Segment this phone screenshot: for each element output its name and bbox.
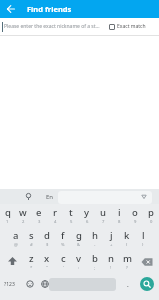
button[interactable]: d xyxy=(39,227,55,250)
button[interactable]: t xyxy=(63,204,79,227)
staticText: 0 xyxy=(150,219,153,225)
button[interactable]: m xyxy=(119,250,135,273)
staticText: : xyxy=(78,265,80,271)
staticText: r xyxy=(53,206,58,219)
staticText: - xyxy=(94,242,96,248)
staticText: 3 xyxy=(38,219,41,225)
staticText: 1 xyxy=(6,219,9,225)
button[interactable]: n xyxy=(103,250,119,273)
button[interactable] xyxy=(41,280,49,288)
button[interactable]: k xyxy=(119,227,135,250)
button[interactable]: g xyxy=(71,227,87,250)
button[interactable]: v xyxy=(71,250,87,273)
button[interactable]: o xyxy=(127,204,143,227)
staticText: ) xyxy=(142,242,144,248)
staticText: i xyxy=(118,206,121,219)
staticText: . xyxy=(127,281,129,289)
staticText: 8 xyxy=(118,219,121,225)
staticText: Please enter the exact nickname of a st.… xyxy=(4,23,100,30)
staticText: y xyxy=(84,206,90,219)
button[interactable]: c xyxy=(55,250,71,273)
button[interactable]: j xyxy=(103,227,119,250)
staticText: ( xyxy=(126,242,128,248)
staticText: ! xyxy=(110,265,112,271)
button[interactable]: s xyxy=(23,227,39,250)
button[interactable]: x xyxy=(39,250,55,273)
staticText: p xyxy=(148,206,154,219)
button[interactable]: h xyxy=(87,227,103,250)
button[interactable]: ?123 xyxy=(0,273,19,296)
staticText: f xyxy=(61,229,65,242)
button[interactable]: z xyxy=(24,250,39,273)
staticText: s xyxy=(29,229,34,242)
staticText: t xyxy=(69,206,73,219)
button[interactable]: q xyxy=(0,204,15,227)
staticText: 6 xyxy=(86,219,89,225)
button[interactable] xyxy=(141,194,147,200)
staticText: 5 xyxy=(70,219,73,225)
staticText: o xyxy=(132,206,138,219)
staticText: # xyxy=(30,242,33,248)
staticText: + xyxy=(110,242,113,248)
staticText: 2 xyxy=(22,219,25,225)
button[interactable]: y xyxy=(79,204,95,227)
staticText: l xyxy=(142,229,145,242)
staticText: d xyxy=(44,229,50,242)
button[interactable]: Please enter the exact nickname of a st.… xyxy=(0,18,159,35)
button[interactable] xyxy=(109,24,115,30)
staticText: q xyxy=(5,206,11,219)
staticText: w xyxy=(19,206,27,219)
button[interactable]: i xyxy=(111,204,127,227)
staticText: v xyxy=(76,252,82,265)
button[interactable]: Find friends xyxy=(0,0,159,18)
staticText: h xyxy=(92,229,98,242)
staticText: z xyxy=(29,252,34,265)
staticText: ?123 xyxy=(4,281,15,288)
staticText: 4 xyxy=(54,219,57,225)
staticText: u xyxy=(100,206,106,219)
staticText: ? xyxy=(126,265,128,271)
button[interactable] xyxy=(7,5,15,13)
button[interactable]: f xyxy=(55,227,71,250)
staticText: 9 xyxy=(134,219,137,225)
button[interactable] xyxy=(26,280,34,288)
staticText: Exact match xyxy=(117,23,146,30)
staticText: * xyxy=(30,265,33,271)
button[interactable] xyxy=(25,193,32,200)
button[interactable] xyxy=(135,250,159,273)
button[interactable]: l xyxy=(135,227,151,250)
button[interactable] xyxy=(0,250,24,273)
button[interactable] xyxy=(58,191,152,204)
button[interactable] xyxy=(140,277,154,291)
staticText: ; xyxy=(94,265,96,271)
staticText: c xyxy=(61,252,66,265)
staticText: k xyxy=(124,229,130,242)
button[interactable]: b xyxy=(87,250,103,273)
staticText: g xyxy=(76,229,82,242)
button[interactable]: u xyxy=(95,204,111,227)
button[interactable]: p xyxy=(143,204,159,227)
button[interactable]: e xyxy=(31,204,47,227)
staticText: n xyxy=(108,252,114,265)
staticText: m xyxy=(123,252,132,265)
staticText: a xyxy=(13,229,19,242)
staticText: ' xyxy=(63,265,64,271)
staticText: " xyxy=(46,265,48,271)
staticText: 7 xyxy=(102,219,105,225)
staticText: & xyxy=(77,242,81,248)
staticText: $ xyxy=(46,242,49,248)
staticText: Find friends xyxy=(27,4,72,14)
staticText: x xyxy=(44,252,50,265)
button[interactable]: En xyxy=(46,193,54,201)
button[interactable]: w xyxy=(15,204,31,227)
staticText: % xyxy=(61,242,65,248)
staticText: @ xyxy=(14,242,18,248)
staticText: b xyxy=(92,252,98,265)
staticText: j xyxy=(110,229,113,242)
button[interactable]: . xyxy=(121,273,135,296)
button[interactable]: a xyxy=(8,227,23,250)
button[interactable]: r xyxy=(47,204,63,227)
staticText: e xyxy=(36,206,42,219)
